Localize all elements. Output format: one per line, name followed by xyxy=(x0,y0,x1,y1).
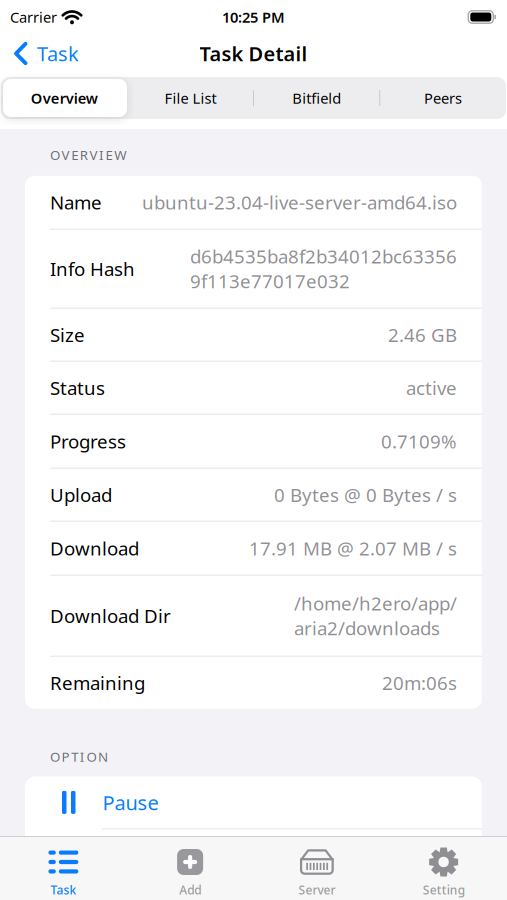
staticText: Progress xyxy=(50,429,126,454)
staticText: OPTION xyxy=(50,748,108,765)
button[interactable]: Peers xyxy=(380,88,506,108)
staticText: 20m:06s xyxy=(382,670,457,695)
staticText: Add xyxy=(179,882,201,898)
button[interactable]: File List xyxy=(127,88,253,108)
staticText: File List xyxy=(164,88,216,108)
staticText: Upload xyxy=(50,482,112,507)
button[interactable]: Add xyxy=(127,836,254,898)
staticText: /home/h2ero/app/ xyxy=(294,591,457,616)
staticText: 2.46 GB xyxy=(388,322,457,347)
button[interactable]: Bitfield xyxy=(253,88,380,108)
staticText: Download Dir xyxy=(50,603,171,628)
button[interactable]: Pause xyxy=(25,776,482,828)
staticText: active xyxy=(406,375,457,400)
staticText: OVERVIEW xyxy=(50,146,126,164)
staticText: aria2/downloads xyxy=(294,616,440,640)
staticText: Task xyxy=(37,40,79,67)
staticText: d6b4535ba8f2b34012bc63356 xyxy=(190,244,457,269)
staticText: 10:25 PM xyxy=(222,7,285,27)
staticText: 0 Bytes @ 0 Bytes / s xyxy=(274,482,457,507)
staticText: ubuntu-23.04-live-server-amd64.iso xyxy=(142,190,457,215)
staticText: Carrier xyxy=(10,7,57,27)
staticText: Setting xyxy=(423,882,465,898)
staticText: Status xyxy=(50,375,105,400)
staticText: Name xyxy=(50,190,102,215)
staticText: Size xyxy=(50,322,85,347)
staticText: Task Detail xyxy=(199,40,307,67)
staticText: Download xyxy=(50,536,139,561)
staticText: 9f113e77017e032 xyxy=(190,269,350,293)
staticText: Overview xyxy=(31,88,98,108)
staticText: Peers xyxy=(424,88,462,108)
staticText: 0.7109% xyxy=(381,429,457,454)
staticText: Info Hash xyxy=(50,256,135,281)
button[interactable]: Task xyxy=(14,40,79,67)
staticText: Remaining xyxy=(50,670,145,695)
button[interactable]: Setting xyxy=(380,836,507,898)
staticText: Pause xyxy=(102,789,158,816)
staticText: Server xyxy=(298,882,335,898)
button[interactable]: Overview xyxy=(1,88,127,108)
staticText: Bitfield xyxy=(292,88,341,108)
staticText: 17.91 MB @ 2.07 MB / s xyxy=(249,536,457,561)
button[interactable]: Server xyxy=(253,836,380,898)
button[interactable]: Task xyxy=(0,836,127,898)
staticText: Task xyxy=(50,882,76,898)
